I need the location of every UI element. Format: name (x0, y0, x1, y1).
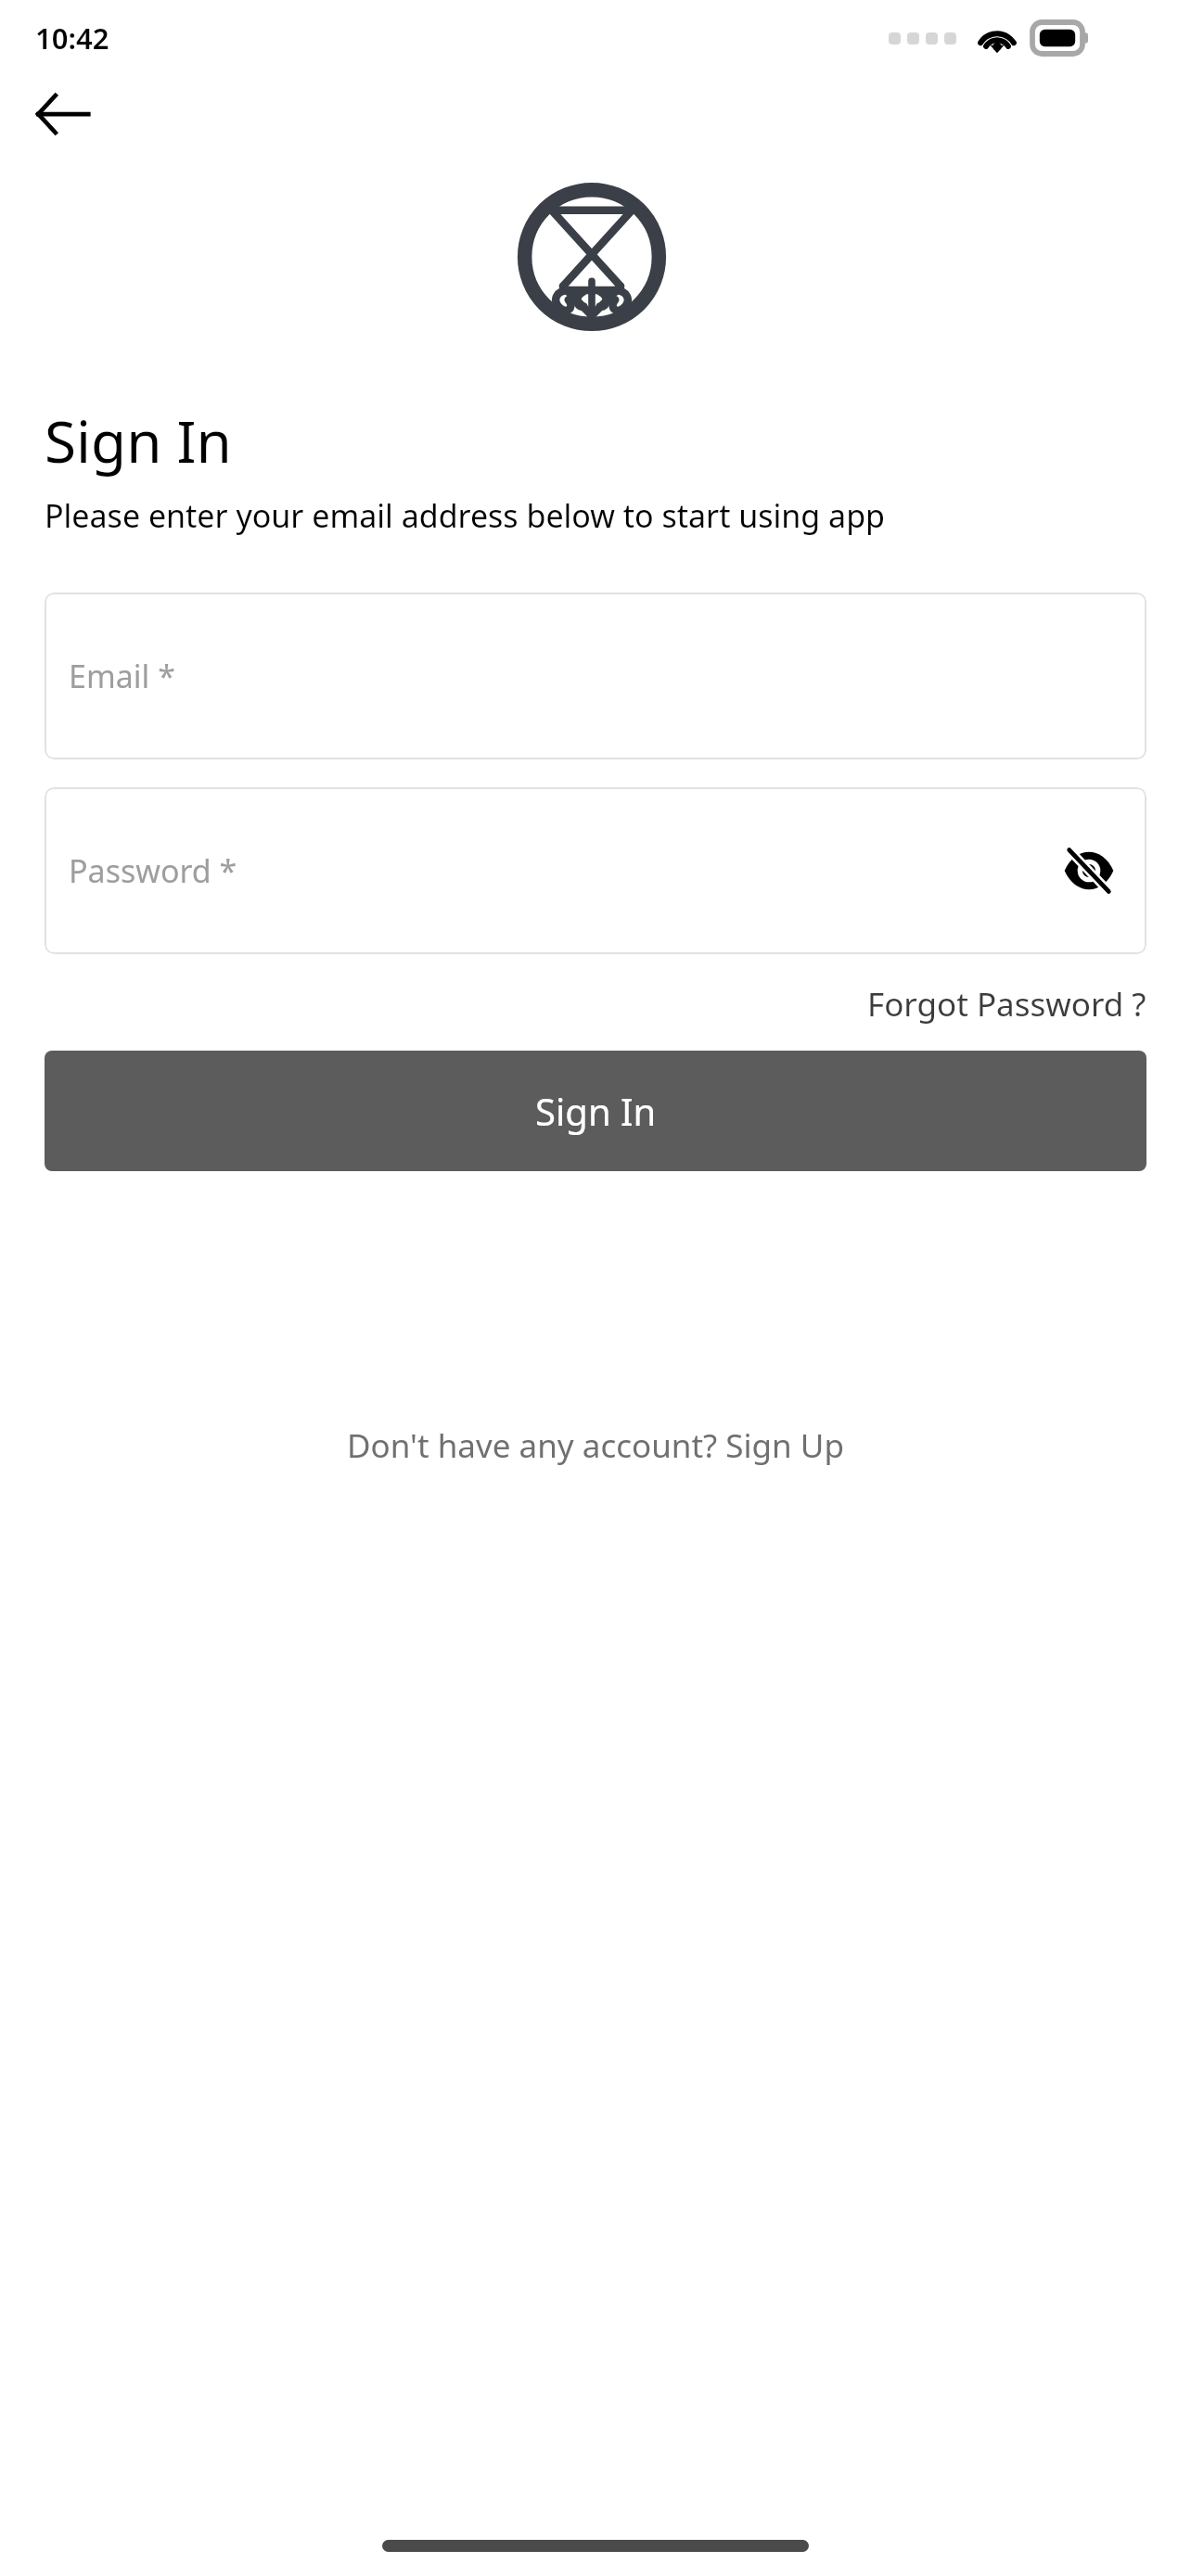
button[interactable]: Password * (45, 787, 1146, 954)
staticText: 10:42 (35, 19, 109, 57)
button[interactable]: Back (22, 73, 104, 155)
staticText: Password * (69, 849, 237, 892)
staticText: Sign In (45, 402, 232, 479)
staticText: Email * (69, 655, 175, 697)
staticText: Sign In (535, 1086, 657, 1136)
button[interactable]: Forgot Password ? (867, 978, 1146, 1030)
staticText: Please enter your email address below to… (45, 494, 885, 537)
staticText: Don't have any account? Sign Up (347, 1423, 844, 1468)
button[interactable]: Don't have any account? Sign Up (328, 1414, 863, 1477)
button[interactable]: Email * (45, 593, 1146, 759)
button[interactable]: Sign In (45, 1051, 1146, 1171)
button[interactable]: Show password (1048, 830, 1130, 912)
staticText: Forgot Password ? (867, 982, 1146, 1027)
